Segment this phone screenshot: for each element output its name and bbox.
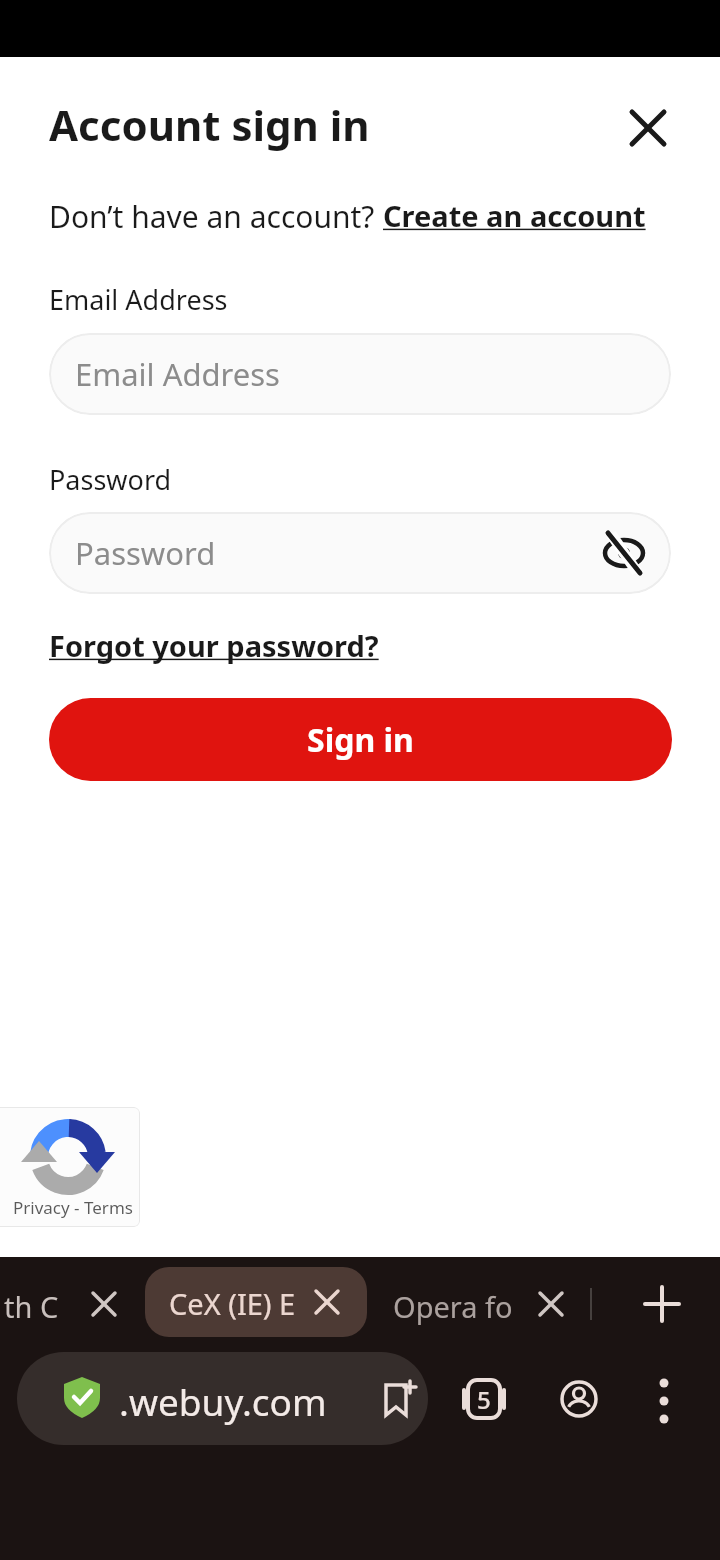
staticText: Sign in [307,718,414,762]
button[interactable]: Email Address [49,333,671,415]
staticText: Password [49,461,172,498]
button[interactable] [643,1285,681,1323]
button[interactable]: 5 [464,1378,504,1420]
button[interactable] [560,1380,598,1418]
button[interactable] [539,1292,563,1316]
button[interactable]: Sign in [49,698,672,781]
staticText: th C [4,1287,59,1326]
button[interactable]: Password [49,512,671,594]
staticText: Email Address [49,281,228,318]
staticText: Don’t have an account? [49,196,383,237]
button[interactable] [315,1290,339,1314]
button[interactable]: Create an account [383,196,646,235]
button[interactable]: CeX (IE) E [145,1267,367,1337]
staticText: .webuy.com [119,1376,327,1426]
staticText: CeX (IE) E [169,1284,296,1323]
button[interactable] [602,531,646,575]
button[interactable] [628,108,668,148]
button[interactable]: Privacy - Terms [0,1107,140,1227]
button[interactable] [649,1366,679,1436]
button[interactable]: .webuy.com [17,1352,428,1445]
staticText: Account sign in [49,96,370,153]
staticText: 5 [477,1383,491,1416]
staticText: Email Address [75,353,280,395]
button[interactable]: Forgot your password? [49,626,379,665]
button[interactable] [92,1292,116,1316]
staticText: Password [75,532,216,574]
button[interactable] [377,1379,417,1419]
staticText: Privacy - Terms [13,1196,133,1219]
button[interactable]: Opera fo [393,1287,513,1326]
